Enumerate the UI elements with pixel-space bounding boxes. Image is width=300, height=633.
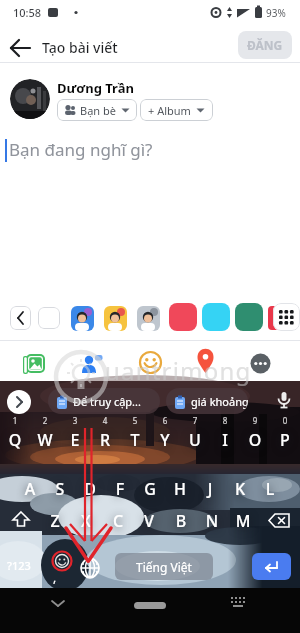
button[interactable] (137, 306, 160, 331)
staticText: Z (40, 510, 70, 532)
staticText: R (90, 429, 120, 451)
staticText: ?123 (4, 558, 34, 573)
button[interactable] (4, 34, 38, 62)
button[interactable] (138, 350, 163, 375)
button[interactable] (196, 347, 216, 375)
staticText: U (180, 429, 210, 451)
staticText: C (103, 510, 133, 532)
button[interactable] (250, 353, 271, 374)
button[interactable] (169, 303, 197, 331)
staticText: 3 (69, 415, 81, 426)
staticText: 9 (249, 415, 261, 426)
button[interactable]: Để truy cập... (48, 388, 160, 414)
staticText: 0 (279, 415, 291, 426)
button[interactable] (10, 306, 31, 330)
staticText: giá khoảng (191, 394, 248, 409)
staticText: D (75, 478, 105, 500)
staticText: 8 (219, 415, 231, 426)
staticText: G (135, 478, 165, 500)
staticText: X (71, 510, 101, 532)
button[interactable]: + Album (140, 99, 213, 121)
staticText: 10:58 (13, 5, 42, 20)
button[interactable]: Bạn bè (57, 99, 137, 121)
staticText: Để truy cập... (73, 394, 141, 409)
button[interactable] (202, 303, 230, 331)
staticText: J (195, 478, 225, 500)
button[interactable] (38, 307, 60, 329)
staticText: Y (150, 429, 180, 451)
staticText: M (228, 510, 258, 532)
staticText: N (197, 510, 227, 532)
staticText: 6 (159, 415, 171, 426)
button[interactable]: Tiếng Việt (115, 553, 213, 580)
staticText: Bạn bè (80, 103, 116, 118)
staticText: K (225, 478, 255, 500)
staticText: 1 (9, 415, 21, 426)
button[interactable]: ĐĂNG (238, 31, 292, 59)
staticText: 93% (266, 6, 286, 20)
staticText: V (134, 510, 164, 532)
staticText: Dương Trần (57, 79, 134, 97)
button[interactable] (229, 594, 247, 610)
staticText: W (30, 429, 60, 451)
staticText: ĐĂNG (247, 37, 283, 53)
button[interactable] (7, 390, 31, 414)
staticText: + Album (148, 103, 191, 118)
staticText: B (166, 510, 196, 532)
button[interactable] (134, 602, 166, 609)
staticText: S (45, 478, 75, 500)
staticText: L (255, 478, 285, 500)
staticText: 7 (189, 415, 201, 426)
button[interactable] (252, 553, 291, 580)
staticText: Q (0, 429, 30, 451)
staticText: Bạn đang nghĩ gì? (9, 138, 153, 161)
staticText: F (105, 478, 135, 500)
button[interactable] (79, 352, 103, 376)
button[interactable] (273, 303, 300, 331)
staticText: H (165, 478, 195, 500)
button[interactable] (22, 352, 46, 376)
staticText: P (270, 429, 300, 451)
button[interactable] (71, 306, 94, 331)
staticText: , (53, 569, 57, 585)
staticText: Tạo bài viết (42, 38, 118, 57)
button[interactable] (235, 303, 263, 331)
button[interactable] (48, 593, 68, 613)
button[interactable]: giá khoảng (166, 388, 248, 414)
staticText: T (120, 429, 150, 451)
staticText: A (15, 478, 45, 500)
staticText: I (210, 429, 240, 451)
staticText: uantrimong (105, 354, 252, 387)
button[interactable] (104, 306, 127, 331)
staticText: 2 (39, 415, 51, 426)
staticText: Tiếng Việt (136, 559, 192, 575)
staticText: 4 (99, 415, 111, 426)
staticText: E (60, 429, 90, 451)
staticText: O (240, 429, 270, 451)
staticText: 5 (129, 415, 141, 426)
